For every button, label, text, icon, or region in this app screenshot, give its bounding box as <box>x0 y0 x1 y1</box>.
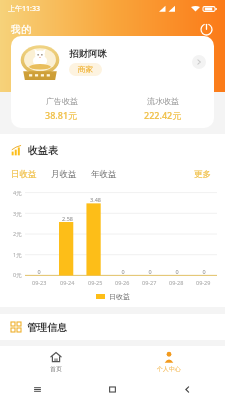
staticText: 招财阿咪 <box>69 48 107 60</box>
button[interactable]: 广告收益 <box>11 88 112 128</box>
staticText: 1元 <box>13 251 22 259</box>
button[interactable]: 年收益 <box>91 167 117 182</box>
button[interactable]: 流水收益 <box>112 88 214 128</box>
button[interactable]: 月收益 <box>51 167 77 182</box>
staticText: 0 <box>175 268 179 275</box>
staticText: 3元 <box>13 210 22 218</box>
staticText: 09-28 <box>169 279 184 286</box>
staticText: 4元 <box>13 189 22 197</box>
staticText: 38.81元 <box>45 109 78 121</box>
button[interactable]: 退出登录 <box>196 19 216 39</box>
staticText: 月收益 <box>51 169 77 180</box>
staticText: 2元 <box>13 230 22 238</box>
staticText: 222.42元 <box>144 109 182 121</box>
staticText: 09-23 <box>32 279 47 286</box>
button[interactable]: 招财阿咪 <box>11 36 214 128</box>
button[interactable]: 日收益 <box>11 167 37 182</box>
staticText: 09-27 <box>142 279 157 286</box>
staticText: 2.58 <box>62 215 73 222</box>
staticText: 首页 <box>50 365 62 373</box>
staticText: 流水收益 <box>147 96 179 106</box>
staticText: 收益表 <box>28 144 58 157</box>
staticText: 3.48 <box>90 196 101 203</box>
staticText: 0 <box>121 268 125 275</box>
staticText: 商家 <box>78 65 93 74</box>
button[interactable]: 查看详情 <box>192 55 206 69</box>
button[interactable]: menu <box>0 378 75 400</box>
staticText: 0 <box>202 268 206 275</box>
staticText: 09-26 <box>115 279 130 286</box>
staticText: 年收益 <box>91 169 117 180</box>
staticText: 更多 <box>194 169 211 180</box>
button[interactable]: 管理信息 <box>0 314 225 340</box>
staticText: 个人中心 <box>157 365 181 373</box>
staticText: 上午11:33 <box>8 4 40 14</box>
staticText: 09-29 <box>196 279 211 286</box>
staticText: 日收益 <box>11 169 37 180</box>
button[interactable]: 个人中心 <box>112 346 225 378</box>
staticText: 09-24 <box>60 279 75 286</box>
button[interactable]: home <box>75 378 150 400</box>
staticText: 管理信息 <box>27 321 67 334</box>
staticText: 0 <box>37 268 41 275</box>
button[interactable]: 首页 <box>0 346 112 378</box>
staticText: 广告收益 <box>46 96 78 106</box>
staticText: 0元 <box>13 271 22 279</box>
staticText: 日收益 <box>109 292 130 301</box>
button[interactable]: back <box>150 378 225 400</box>
staticText: 09-25 <box>88 279 103 286</box>
button[interactable]: 更多 <box>191 166 214 183</box>
staticText: 0 <box>148 268 152 275</box>
staticText: 我的 <box>11 23 31 36</box>
